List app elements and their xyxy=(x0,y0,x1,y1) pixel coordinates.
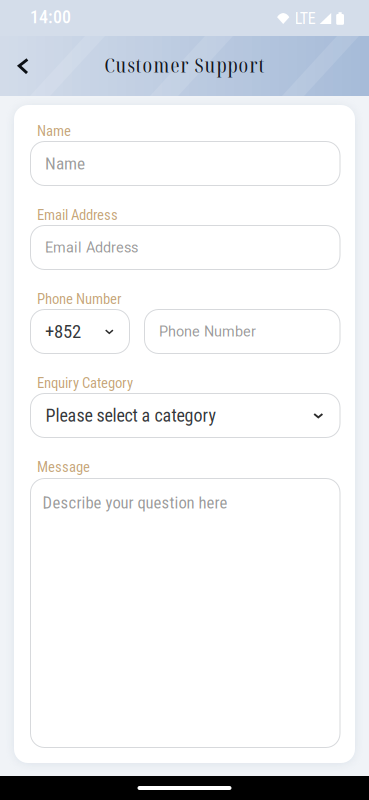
button[interactable]: Describe your question here xyxy=(30,478,340,748)
button[interactable]: Back xyxy=(0,44,36,88)
staticText: Please select a category xyxy=(45,405,215,426)
staticText: Phone Number xyxy=(159,323,256,340)
staticText: Enquiry Category xyxy=(37,374,133,392)
staticText: Email Address xyxy=(45,239,138,256)
staticText: Name xyxy=(45,153,85,174)
button[interactable]: Phone Number xyxy=(144,309,340,354)
staticText: Phone Number xyxy=(37,290,121,308)
staticText: Message xyxy=(37,458,90,476)
staticText: LTE xyxy=(295,9,316,28)
button[interactable]: Please select a category xyxy=(30,393,340,438)
button[interactable]: Email Address xyxy=(30,225,340,270)
staticText: Name xyxy=(37,122,71,140)
button[interactable]: Country code xyxy=(30,309,130,354)
staticText: +852 xyxy=(45,321,81,342)
staticText: Customer Support xyxy=(104,52,264,78)
staticText: Email Address xyxy=(37,206,118,224)
staticText: 14:00 xyxy=(30,6,71,28)
staticText: Describe your question here xyxy=(42,493,227,512)
button[interactable]: Name xyxy=(30,141,340,186)
